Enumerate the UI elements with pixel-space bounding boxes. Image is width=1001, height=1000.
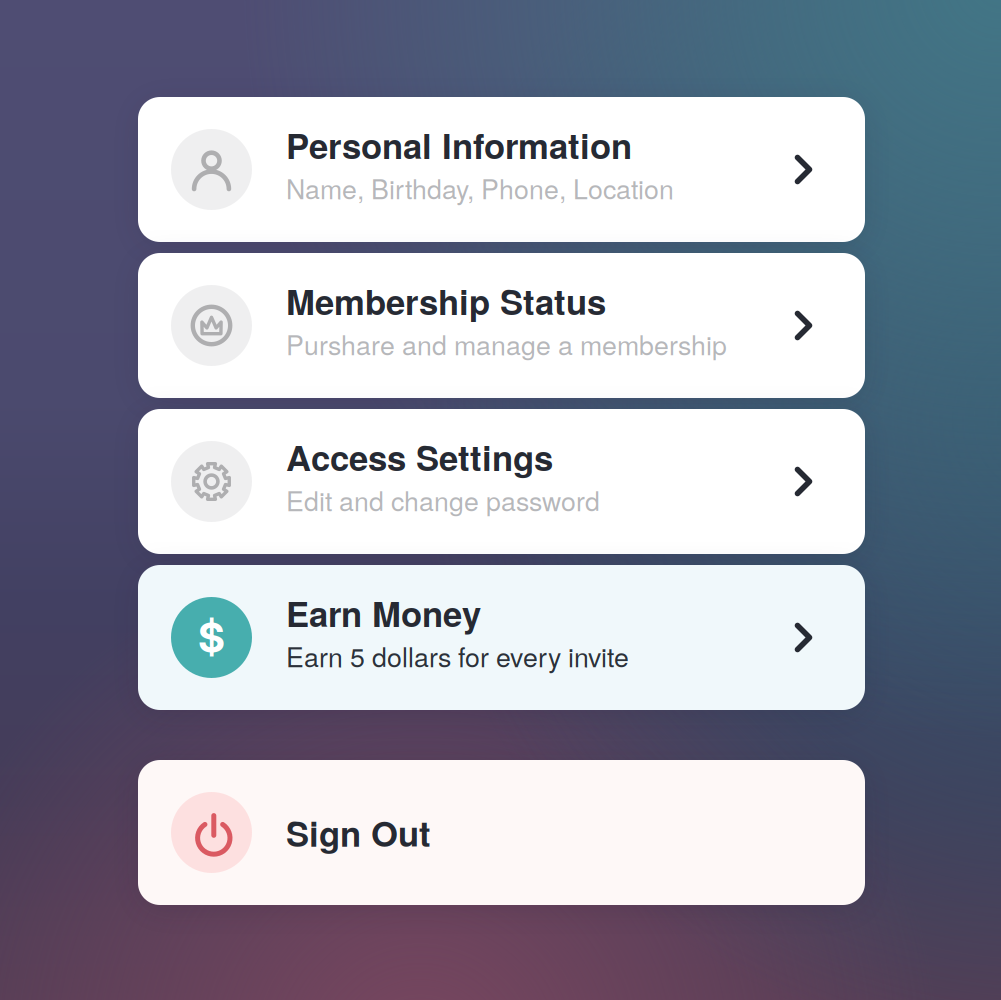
button[interactable]: Access Settings	[138, 409, 865, 554]
staticText: Earn Money	[286, 588, 481, 638]
staticText: $	[198, 612, 225, 662]
staticText: Edit and change password	[286, 481, 600, 519]
staticText: Personal Information	[286, 120, 632, 170]
staticText: Sign Out	[286, 808, 431, 857]
staticText: Earn 5 dollars for every invite	[286, 637, 629, 675]
staticText: Name, Birthday, Phone, Location	[286, 169, 674, 207]
button[interactable]: $	[138, 565, 865, 710]
staticText: Membership Status	[286, 276, 606, 326]
staticText: Purshare and manage a membership	[286, 325, 727, 363]
button[interactable]: Membership Status	[138, 253, 865, 398]
button[interactable]: Personal Information	[138, 97, 865, 242]
button[interactable]: Sign Out	[138, 760, 865, 905]
staticText: Access Settings	[286, 432, 553, 482]
